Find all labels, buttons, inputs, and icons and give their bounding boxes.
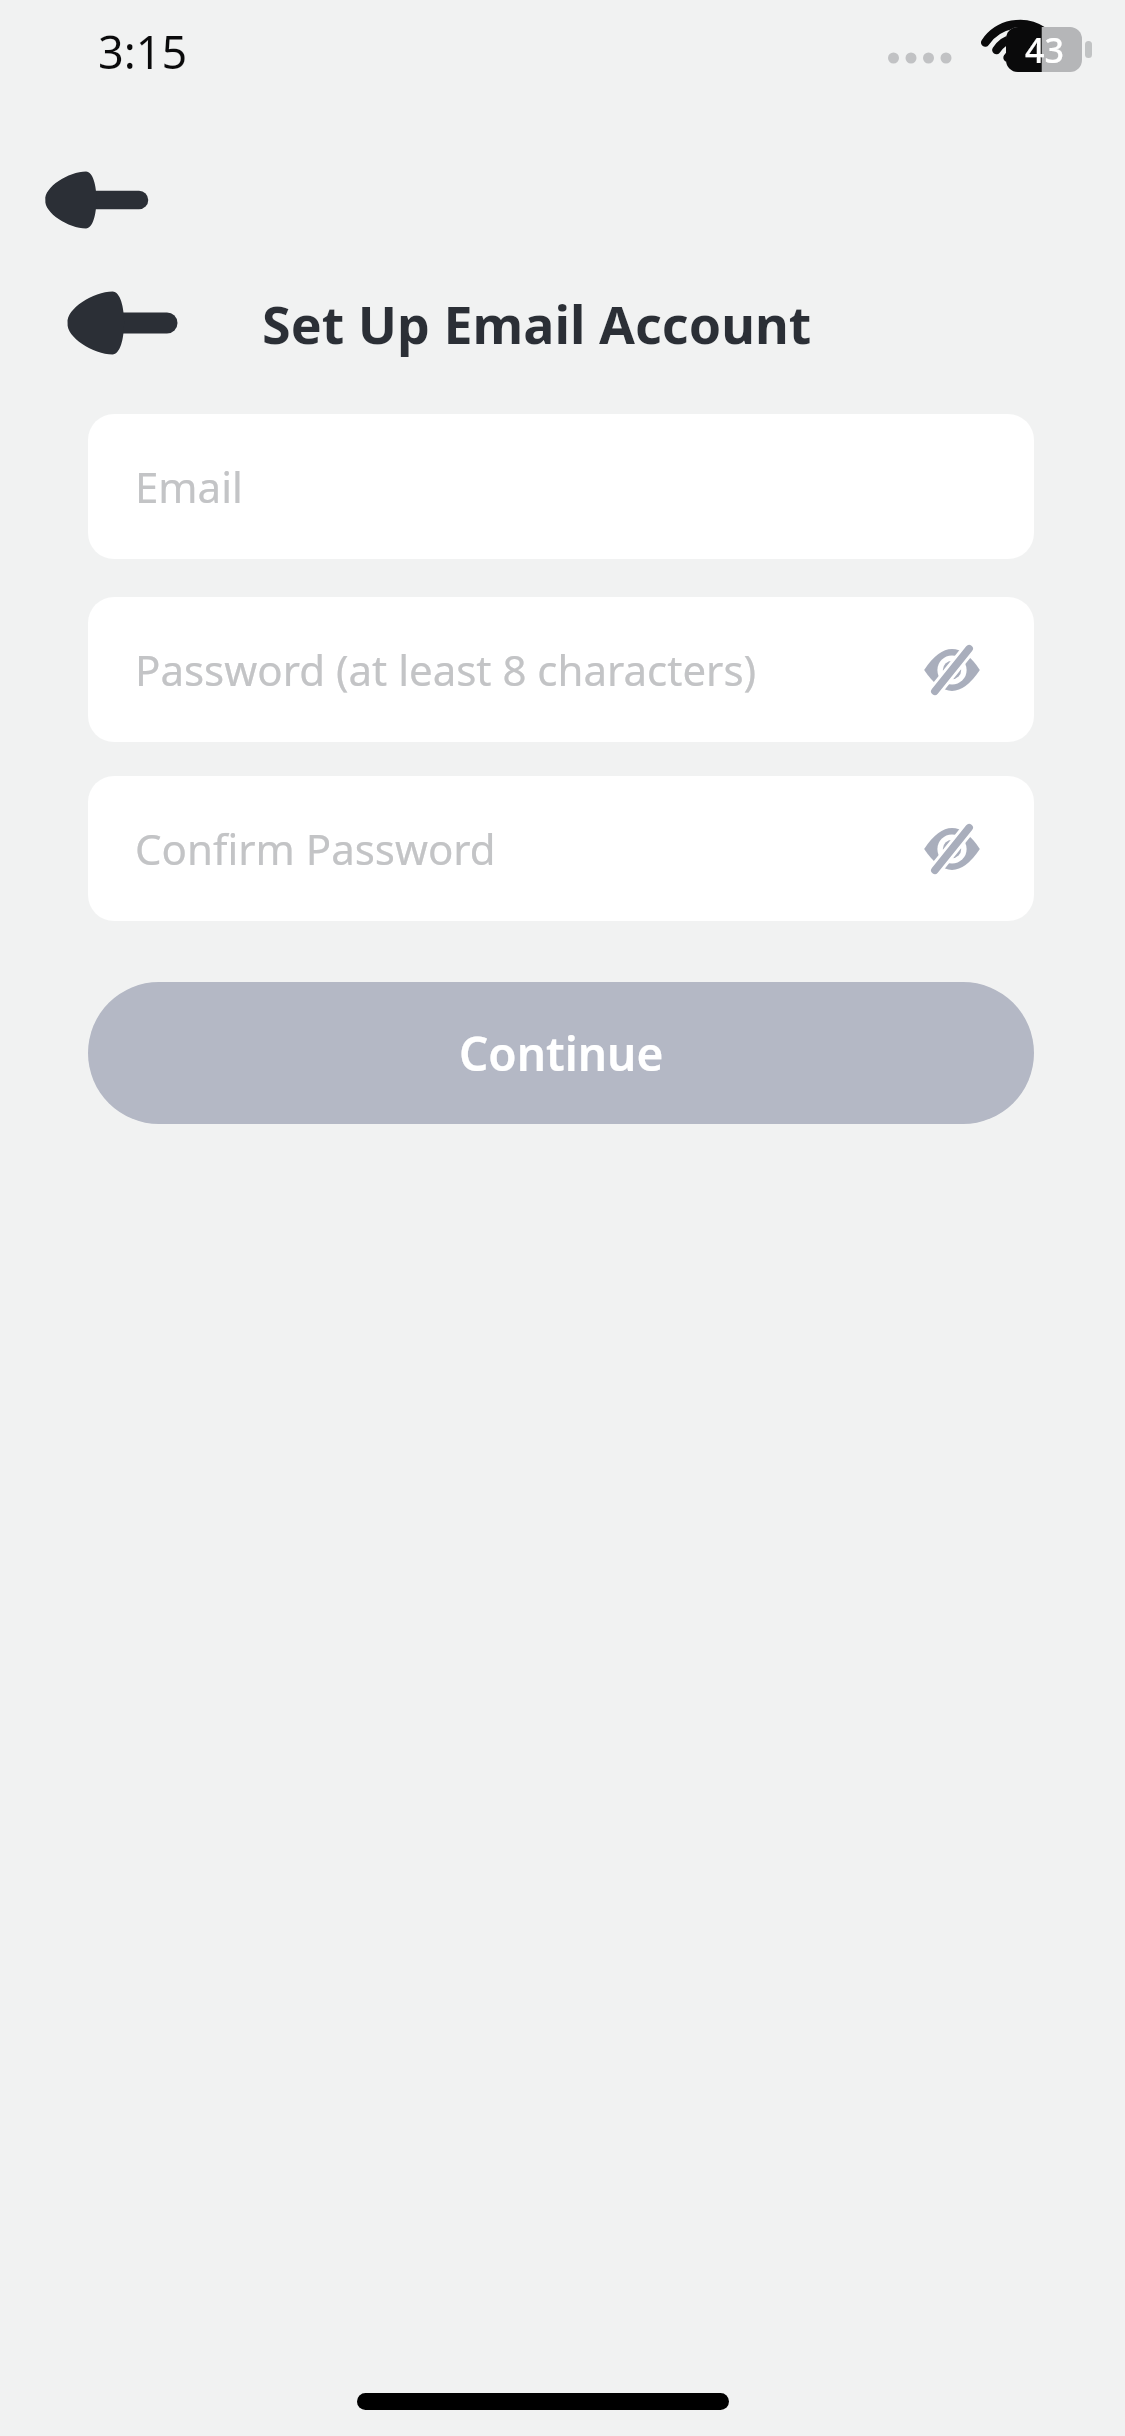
button[interactable]: Continue — [88, 982, 1034, 1124]
button[interactable]: Back — [26, 156, 176, 244]
button[interactable]: Password (at least 8 characters) — [88, 597, 1034, 742]
staticText: Set Up Email Account — [262, 288, 812, 359]
staticText: Password (at least 8 characters) — [135, 641, 757, 698]
button[interactable]: Email — [88, 414, 1034, 559]
staticText: 3:15 — [98, 21, 188, 82]
staticText: Email — [135, 458, 243, 515]
staticText: 43 — [1025, 27, 1064, 72]
staticText: Continue — [459, 1022, 664, 1085]
button[interactable]: Show password — [912, 630, 992, 710]
button[interactable]: Navigate up — [46, 274, 210, 372]
button[interactable]: Show confirm password — [912, 809, 992, 889]
staticText: Confirm Password — [135, 820, 496, 877]
button[interactable]: Confirm Password — [88, 776, 1034, 921]
